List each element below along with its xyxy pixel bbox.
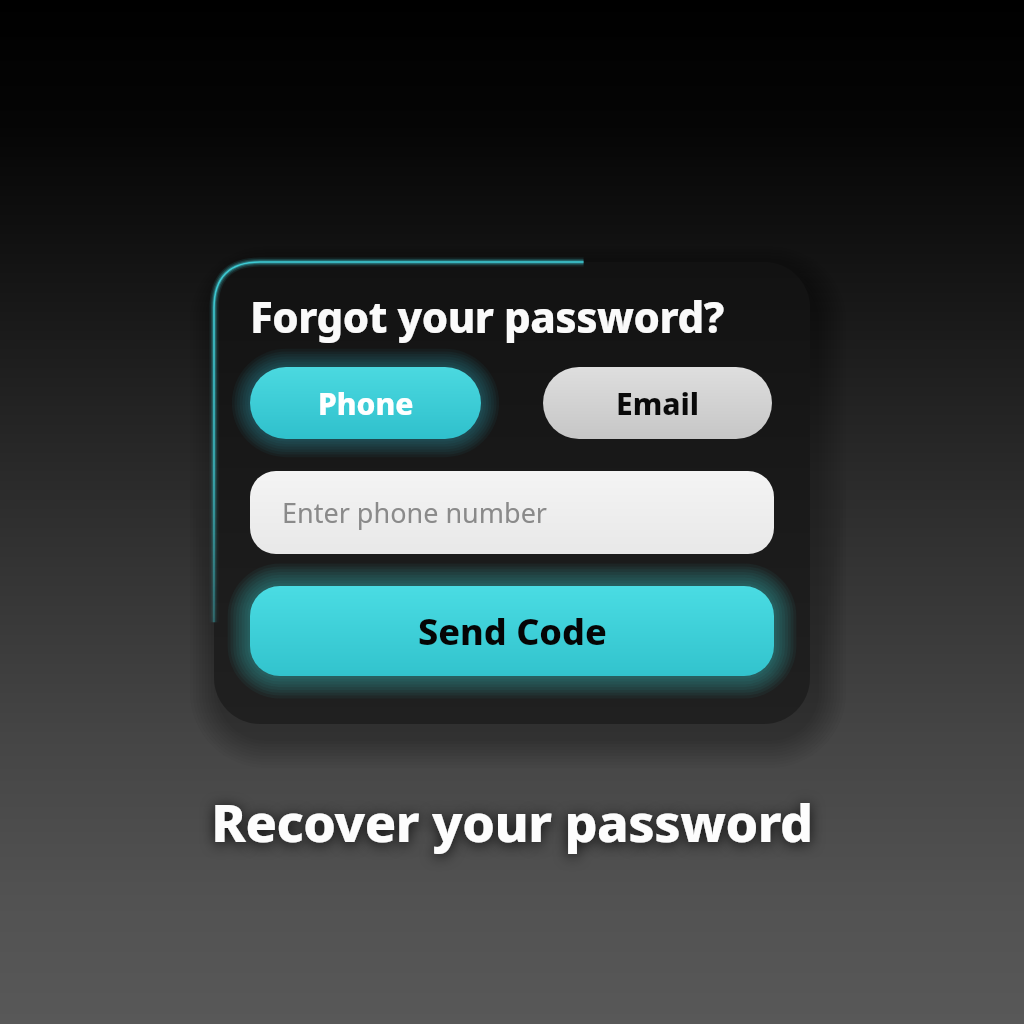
button[interactable]: Phone xyxy=(250,367,481,439)
staticText: Enter phone number xyxy=(282,494,548,531)
staticText: Recover your password xyxy=(211,786,813,857)
button[interactable]: Send Code xyxy=(250,586,774,676)
staticText: Phone xyxy=(318,383,414,424)
button[interactable]: Enter phone number xyxy=(250,471,774,554)
staticText: Email xyxy=(616,383,700,424)
staticText: Forgot your password? xyxy=(250,288,724,345)
button[interactable]: Email xyxy=(543,367,772,439)
staticText: Send Code xyxy=(418,607,607,656)
